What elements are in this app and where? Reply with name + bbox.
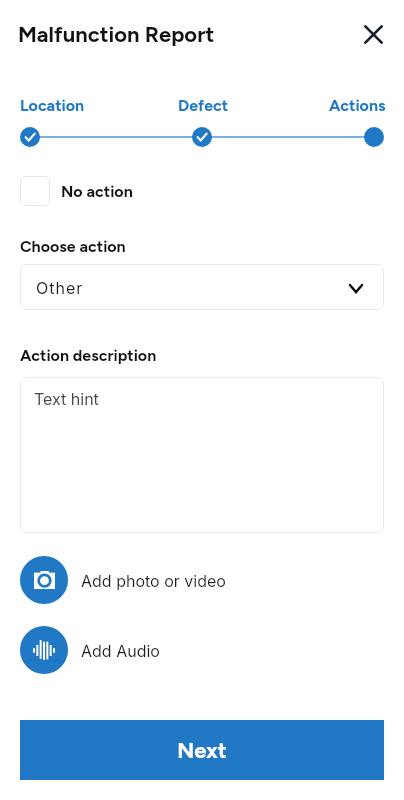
button[interactable]: Close xyxy=(352,13,395,56)
staticText: Next xyxy=(177,737,227,763)
staticText: Text hint xyxy=(34,389,99,408)
button[interactable]: No action xyxy=(20,176,133,206)
staticText: Add photo or video xyxy=(81,571,226,590)
staticText: Location xyxy=(20,96,85,115)
staticText: Actions xyxy=(329,96,386,115)
button[interactable]: Text hint xyxy=(20,377,384,533)
staticText: Action description xyxy=(20,346,157,365)
button[interactable]: Add photo or video xyxy=(20,556,226,604)
button[interactable]: Add Audio xyxy=(20,626,160,674)
button[interactable]: Next xyxy=(20,720,384,780)
staticText: Other xyxy=(36,278,84,297)
staticText: Malfunction Report xyxy=(18,21,215,47)
staticText: Defect xyxy=(178,96,229,115)
staticText: Choose action xyxy=(20,237,126,256)
staticText: No action xyxy=(61,182,133,201)
button[interactable]: Other xyxy=(20,264,384,310)
staticText: Add Audio xyxy=(81,641,160,660)
